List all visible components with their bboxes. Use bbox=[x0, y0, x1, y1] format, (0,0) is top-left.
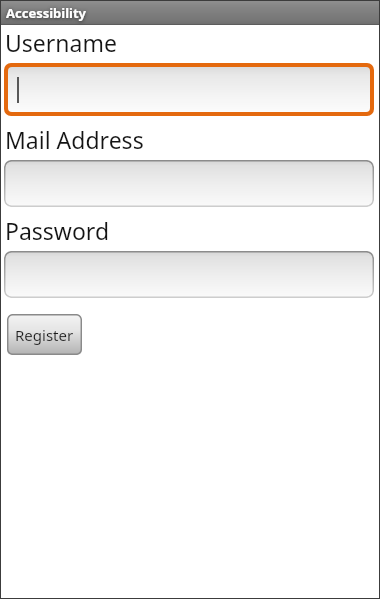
staticText: Accessibility bbox=[6, 4, 87, 22]
button[interactable]: Text input bbox=[4, 160, 374, 207]
button[interactable]: Text input bbox=[4, 251, 374, 298]
button[interactable]: Register bbox=[7, 314, 82, 355]
staticText: Password bbox=[5, 215, 110, 246]
staticText: Register bbox=[15, 325, 74, 345]
staticText: Mail Address bbox=[5, 124, 144, 155]
button[interactable]: Username input, focused bbox=[4, 63, 374, 116]
staticText: Username bbox=[5, 27, 117, 58]
